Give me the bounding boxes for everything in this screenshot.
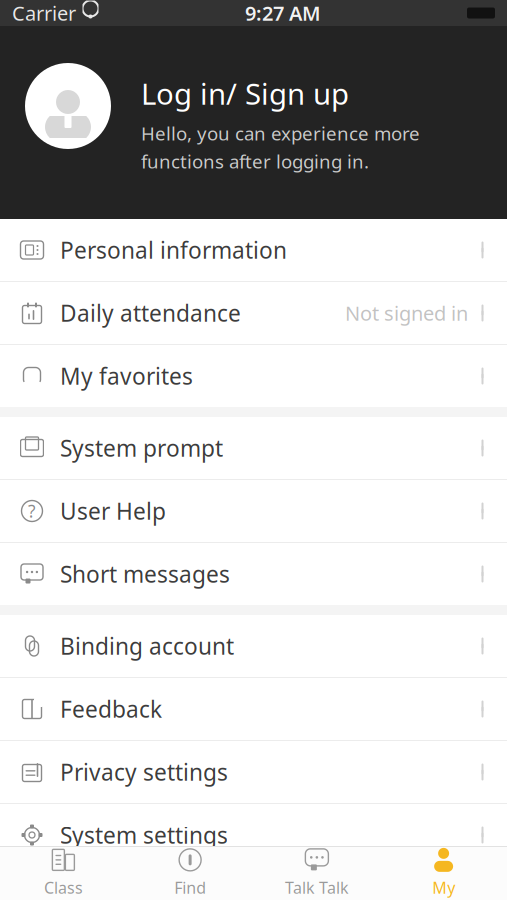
staticText: Personal information bbox=[60, 235, 287, 265]
staticText: functions after logging in. bbox=[141, 149, 369, 173]
button[interactable]: Find bbox=[127, 846, 254, 900]
staticText: ? bbox=[28, 499, 36, 522]
button[interactable]: System prompt bbox=[0, 417, 507, 479]
staticText: Binding account bbox=[60, 631, 234, 661]
staticText: Not signed in bbox=[345, 300, 468, 326]
staticText: System settings bbox=[60, 820, 228, 850]
staticText: Hello, you can experience more bbox=[141, 121, 420, 146]
staticText: User Help bbox=[60, 496, 166, 526]
button[interactable]: Feedback bbox=[0, 678, 507, 740]
staticText: My favorites bbox=[60, 361, 193, 391]
staticText: Short messages bbox=[60, 559, 230, 589]
button[interactable]: System settings bbox=[0, 804, 507, 866]
button[interactable]: Binding account bbox=[0, 615, 507, 677]
button[interactable]: ? bbox=[0, 480, 507, 542]
staticText: Class bbox=[44, 877, 83, 898]
staticText: Feedback bbox=[60, 694, 162, 724]
staticText: Privacy settings bbox=[60, 757, 228, 787]
button[interactable]: Talk Talk bbox=[253, 846, 380, 900]
staticText: Carrier bbox=[12, 0, 76, 26]
button[interactable]: Short messages bbox=[0, 543, 507, 605]
staticText: My bbox=[432, 877, 455, 898]
button[interactable]: Class bbox=[0, 846, 127, 900]
staticText: Find bbox=[174, 877, 206, 898]
button[interactable]: Personal information bbox=[0, 219, 507, 281]
button[interactable]: Log in/ Sign up bbox=[0, 26, 507, 219]
button[interactable]: Daily attendance bbox=[0, 282, 507, 344]
button[interactable]: My bbox=[380, 846, 507, 900]
button[interactable]: My favorites bbox=[0, 345, 507, 407]
staticText: Daily attendance bbox=[60, 298, 241, 328]
button[interactable]: Privacy settings bbox=[0, 741, 507, 803]
staticText: Log in/ Sign up bbox=[141, 74, 349, 113]
staticText: Talk Talk bbox=[285, 877, 349, 898]
staticText: 9:27 AM bbox=[245, 0, 321, 26]
staticText: System prompt bbox=[60, 433, 223, 463]
